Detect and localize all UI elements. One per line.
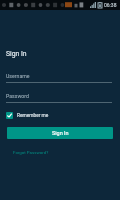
staticText: Sign In: [6, 50, 27, 58]
staticText: Sign In: [52, 130, 69, 136]
staticText: Remember me: [17, 113, 49, 119]
staticText: 06:38: [104, 2, 117, 8]
staticText: Username: [6, 73, 30, 79]
button[interactable]: Remember me: [6, 112, 49, 119]
staticText: Forgot Password?: [13, 150, 49, 155]
staticText: Password: [6, 93, 29, 99]
button[interactable]: Forgot Password?: [13, 150, 49, 155]
button[interactable]: Sign In: [7, 127, 113, 139]
